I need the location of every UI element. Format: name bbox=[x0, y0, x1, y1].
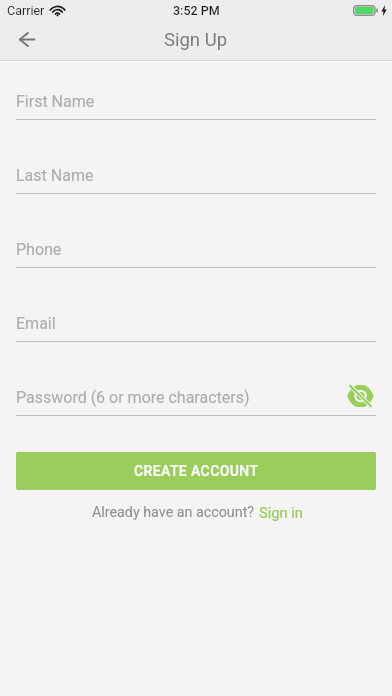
staticText: Sign in bbox=[259, 504, 303, 521]
staticText: 3:52 PM bbox=[173, 3, 220, 18]
button[interactable]: Show password bbox=[344, 380, 376, 412]
staticText: Sign Up bbox=[164, 29, 228, 51]
staticText: Already have an account? bbox=[92, 504, 255, 521]
staticText: Phone bbox=[16, 240, 62, 259]
button[interactable]: CREATE ACCOUNT bbox=[16, 452, 376, 490]
staticText: Password (6 or more characters) bbox=[16, 388, 250, 407]
staticText: Email bbox=[16, 314, 56, 333]
staticText: Last Name bbox=[16, 166, 94, 185]
staticText: CREATE ACCOUNT bbox=[134, 463, 259, 479]
button[interactable]: Back bbox=[5, 18, 49, 61]
staticText: First Name bbox=[16, 92, 95, 111]
button[interactable]: Sign in bbox=[259, 504, 303, 521]
staticText: Carrier bbox=[7, 3, 45, 18]
